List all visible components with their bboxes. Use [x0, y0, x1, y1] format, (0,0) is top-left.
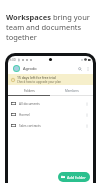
button[interactable]: Sales contracts	[8, 120, 93, 131]
staticText: Workspaces	[6, 12, 51, 22]
staticText: 15 days left for free trial	[17, 75, 56, 80]
staticText: 9:30	[9, 57, 16, 62]
staticText: Members	[65, 89, 79, 93]
button[interactable]: More options	[84, 65, 91, 72]
button[interactable]: Hormel	[8, 109, 93, 120]
button[interactable]: More options for All documents	[84, 101, 90, 107]
staticText: Hormel	[19, 113, 30, 117]
staticText: All documents	[19, 102, 40, 106]
staticText: Sales contracts	[19, 124, 41, 128]
button[interactable]: Folders	[8, 86, 50, 95]
button[interactable]: All documents	[8, 98, 93, 109]
button[interactable]: Search	[76, 65, 84, 73]
button[interactable]: More options for Sales contracts	[84, 123, 90, 129]
button[interactable]: Members	[50, 86, 93, 95]
button[interactable]: More options for Hormel	[84, 112, 90, 118]
staticText: Check how to upgrade your plan	[17, 80, 62, 84]
staticText: Add folder	[67, 175, 86, 180]
staticText: Agrodo	[23, 66, 37, 71]
staticText: together	[6, 32, 37, 42]
button[interactable]: 15 days left for free trial	[8, 74, 93, 85]
button[interactable]: Add folder	[58, 172, 90, 182]
staticText: Folders	[24, 89, 35, 93]
staticText: bring your	[51, 12, 90, 22]
staticText: team and documents	[6, 22, 82, 32]
